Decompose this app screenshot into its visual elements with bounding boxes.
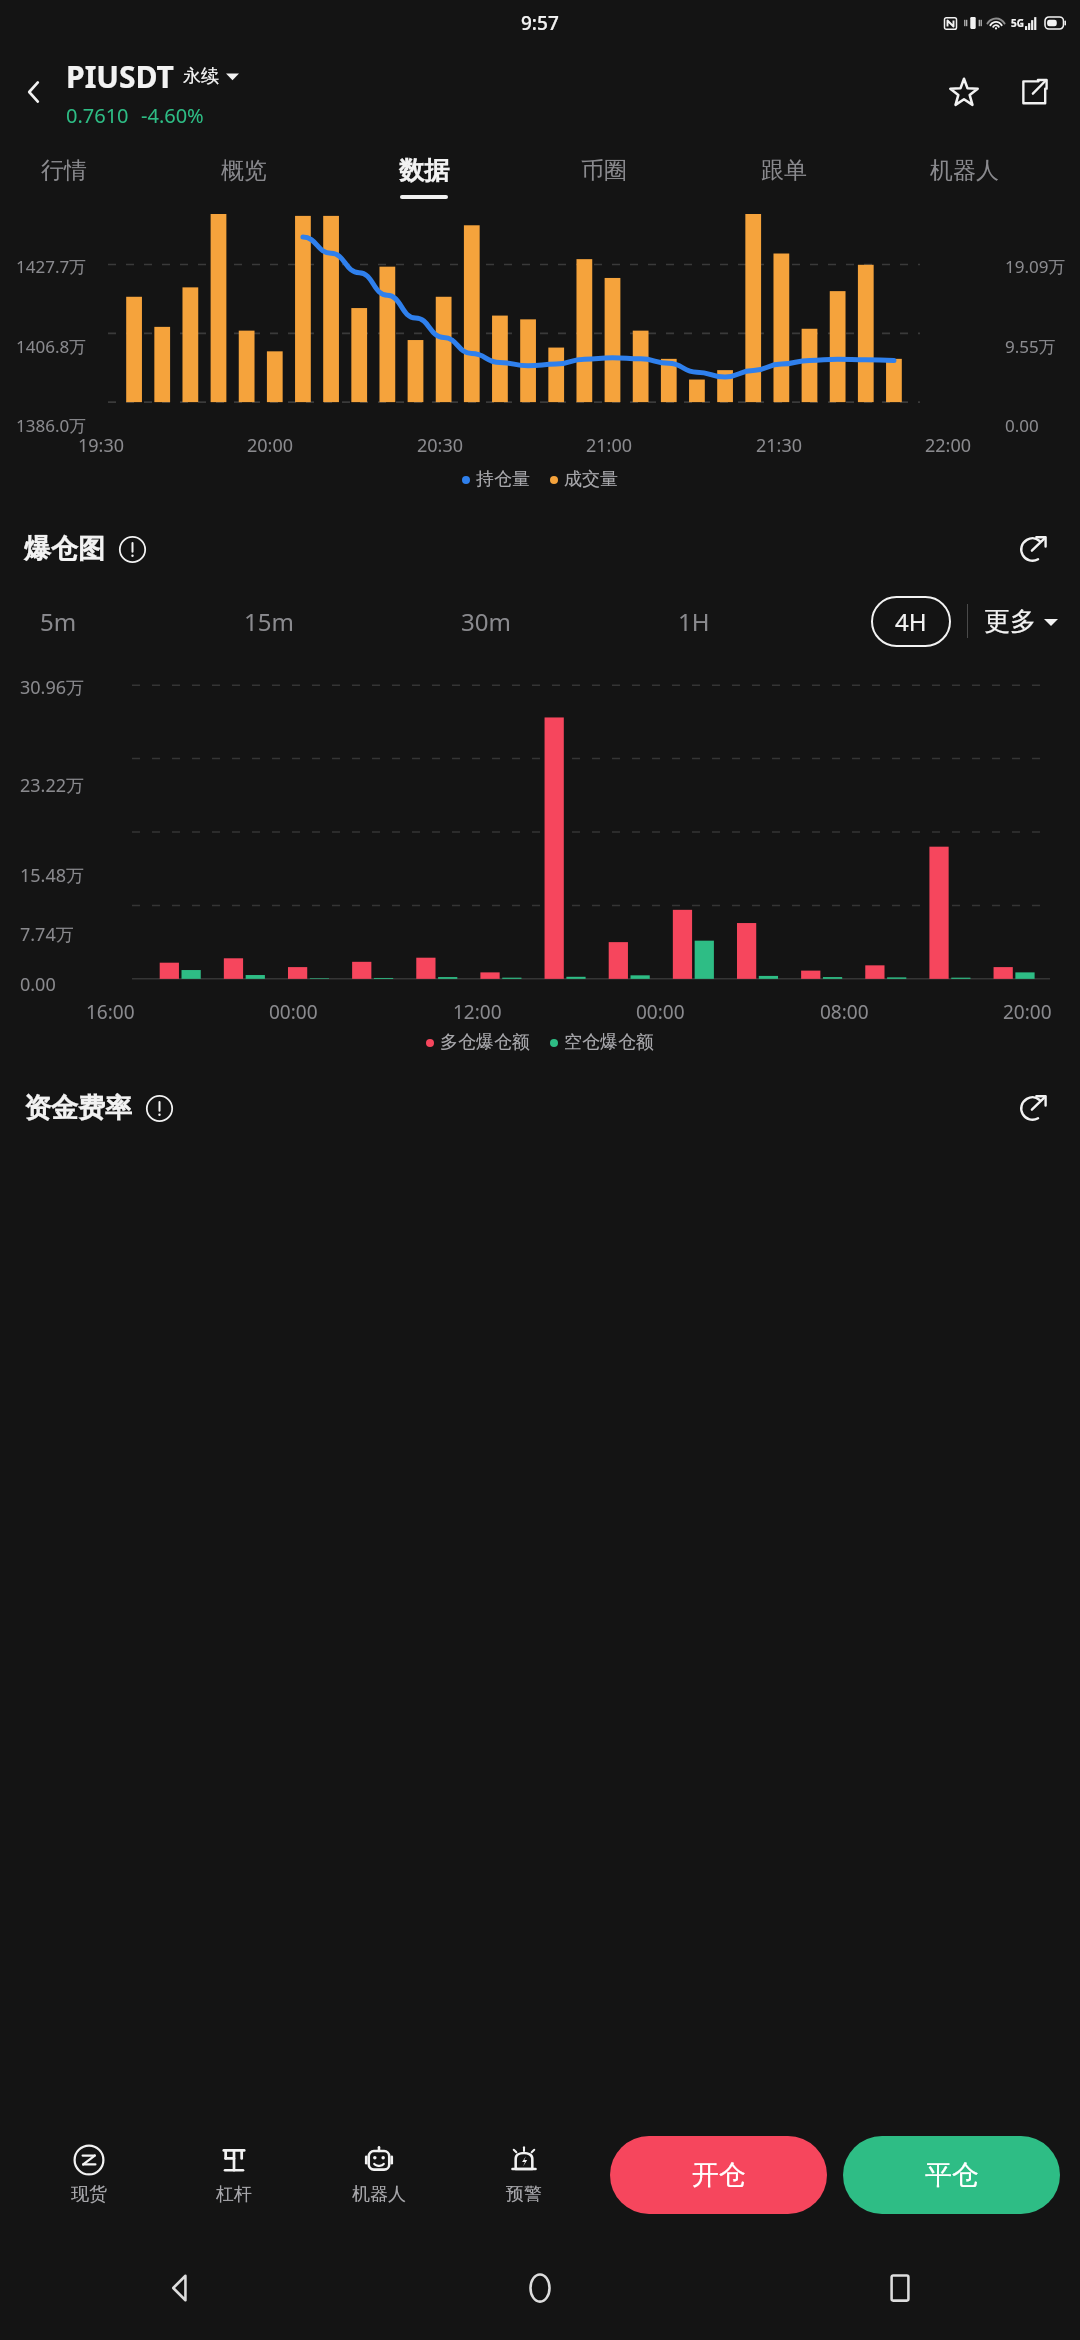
button[interactable]: Expand — [1010, 526, 1056, 572]
staticText: 16:00 — [86, 999, 135, 1025]
button[interactable]: 跟单 — [694, 146, 874, 208]
staticText: 跟单 — [761, 156, 807, 185]
staticText: 平仓 — [925, 2158, 979, 2192]
staticText: 12:00 — [453, 999, 502, 1025]
button[interactable]: 杠杆 — [161, 2115, 306, 2235]
staticText: 4H — [895, 605, 927, 638]
staticText: -4.60% — [141, 102, 204, 129]
staticText: 23.22万 — [20, 773, 85, 798]
staticText: 22:00 — [925, 433, 972, 458]
staticText: 数据 — [399, 155, 449, 186]
staticText: 0.00 — [1005, 414, 1039, 437]
button[interactable]: Favorite — [936, 64, 992, 120]
staticText: 30m — [461, 605, 511, 638]
button[interactable]: 15m — [238, 595, 300, 648]
staticText: 币圈 — [581, 156, 627, 185]
staticText: 5G — [1011, 16, 1024, 30]
staticText: 机器人 — [352, 2183, 406, 2206]
staticText: 7.74万 — [20, 922, 74, 947]
staticText: 空仓爆仓额 — [564, 1031, 654, 1054]
button[interactable]: 机器人 — [874, 146, 1054, 208]
staticText: 19.09万 — [1005, 255, 1066, 278]
staticText: 00:00 — [636, 999, 685, 1025]
button[interactable]: 5m — [34, 595, 83, 648]
staticText: 永续 — [183, 65, 219, 88]
staticText: 更多 — [984, 605, 1036, 638]
staticText: 15.48万 — [20, 863, 85, 888]
staticText: 持仓量 — [476, 468, 530, 491]
staticText: 00:00 — [269, 999, 318, 1025]
staticText: 1427.7万 — [16, 255, 87, 278]
staticText: 19:30 — [78, 433, 125, 458]
staticText: 5m — [40, 605, 77, 638]
staticText: 多仓爆仓额 — [440, 1031, 530, 1054]
button[interactable]: 开仓 — [610, 2136, 827, 2214]
staticText: 机器人 — [930, 156, 999, 185]
staticText: 9.55万 — [1005, 335, 1056, 358]
button[interactable]: 行情 — [0, 146, 154, 208]
staticText: 开仓 — [692, 2158, 746, 2192]
staticText: 概览 — [221, 156, 267, 185]
button[interactable]: Share — [1006, 64, 1062, 120]
button[interactable]: 现货 — [16, 2115, 161, 2235]
staticText: PIUSDT — [66, 56, 174, 97]
staticText: 成交量 — [564, 468, 618, 491]
staticText: 行情 — [41, 156, 87, 185]
button[interactable]: 机器人 — [306, 2115, 451, 2235]
staticText: 1H — [678, 605, 710, 638]
button[interactable]: Recents — [720, 2235, 1080, 2340]
staticText: 0.00 — [20, 972, 56, 997]
button[interactable]: 4H — [871, 596, 951, 647]
button[interactable]: Expand — [1010, 1085, 1056, 1131]
staticText: 21:30 — [756, 433, 803, 458]
staticText: 0.7610 — [66, 102, 129, 129]
staticText: 爆仓图 — [24, 532, 105, 566]
button[interactable]: Home — [360, 2235, 720, 2340]
staticText: 21:00 — [586, 433, 633, 458]
button[interactable]: 数据 — [334, 146, 514, 208]
button[interactable]: 1H — [672, 595, 716, 648]
staticText: 9:57 — [521, 10, 559, 36]
button[interactable]: Info — [117, 534, 147, 564]
button[interactable]: Info — [144, 1093, 174, 1123]
button[interactable]: 概览 — [154, 146, 334, 208]
staticText: 1406.8万 — [16, 335, 87, 358]
staticText: 资金费率 — [24, 1091, 132, 1125]
button[interactable]: 更多 — [984, 597, 1058, 646]
staticText: 15m — [244, 605, 294, 638]
button[interactable]: Back — [8, 66, 60, 118]
button[interactable]: 30m — [455, 595, 517, 648]
button[interactable]: Back — [0, 2235, 360, 2340]
staticText: 杠杆 — [216, 2183, 252, 2206]
staticText: 20:00 — [1003, 999, 1052, 1025]
button[interactable]: 平仓 — [843, 2136, 1060, 2214]
staticText: 1386.0万 — [16, 414, 87, 437]
button[interactable]: 币圈 — [514, 146, 694, 208]
staticText: 08:00 — [820, 999, 869, 1025]
staticText: 20:30 — [417, 433, 464, 458]
staticText: 20:00 — [247, 433, 294, 458]
staticText: 30.96万 — [20, 675, 85, 700]
button[interactable]: 预警 — [451, 2115, 596, 2235]
staticText: 现货 — [71, 2183, 107, 2206]
staticText: 预警 — [506, 2183, 542, 2206]
